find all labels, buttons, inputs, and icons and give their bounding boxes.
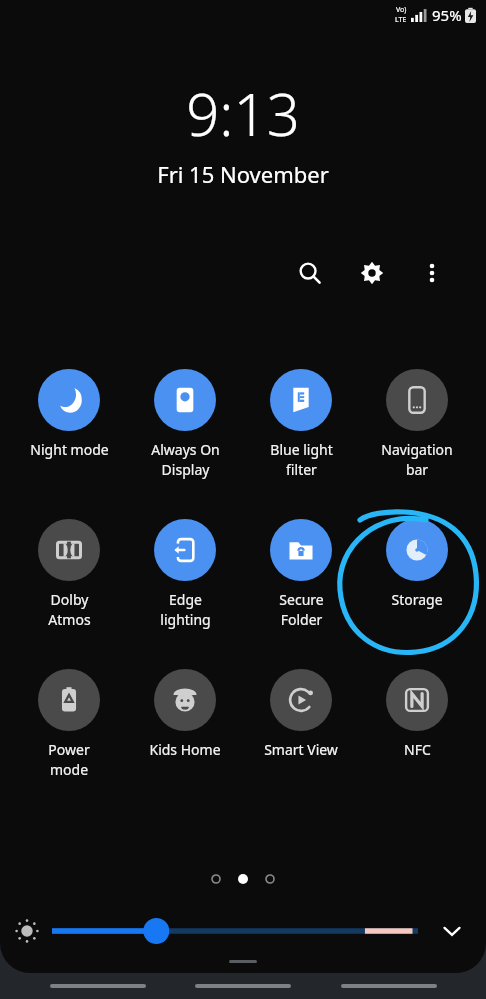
staticText: Power mode — [48, 740, 90, 779]
staticText: Night mode — [30, 440, 109, 459]
button[interactable] — [52, 913, 418, 949]
button[interactable]: Blue light filter — [246, 367, 356, 481]
staticText: Kids Home — [149, 740, 221, 759]
button[interactable]: Smart View — [246, 667, 356, 761]
button[interactable]: Navigation bar — [362, 367, 472, 481]
staticText: Always On Display — [151, 440, 220, 479]
staticText: Vo) — [396, 5, 407, 15]
button[interactable]: Night mode — [14, 367, 124, 461]
staticText: Smart View — [264, 740, 338, 759]
button[interactable]: Secure Folder — [246, 517, 356, 631]
button[interactable]: Expand — [432, 911, 472, 951]
button[interactable]: Always On Display — [130, 367, 240, 481]
staticText: Fri 15 November — [0, 159, 486, 189]
button[interactable]: NFC — [362, 667, 472, 761]
staticText: 9:13 — [0, 74, 486, 153]
staticText: Secure Folder — [279, 590, 324, 629]
staticText: Edge lighting — [160, 590, 211, 629]
staticText: Dolby Atmos — [48, 590, 91, 629]
button[interactable]: Power mode — [14, 667, 124, 781]
button[interactable]: Dolby Atmos — [14, 517, 124, 631]
staticText: Storage — [391, 590, 443, 609]
button[interactable]: Storage — [362, 517, 472, 611]
staticText: 95% — [432, 5, 462, 25]
button[interactable]: More options — [408, 249, 456, 297]
button[interactable]: Settings — [348, 249, 396, 297]
staticText: Blue light filter — [270, 440, 333, 479]
staticText: Navigation bar — [381, 440, 453, 479]
staticText: NFC — [404, 740, 431, 759]
staticText: LTE — [395, 15, 407, 25]
button[interactable]: Edge lighting — [130, 517, 240, 631]
button[interactable]: Search — [286, 249, 334, 297]
button[interactable]: Kids Home — [130, 667, 240, 761]
